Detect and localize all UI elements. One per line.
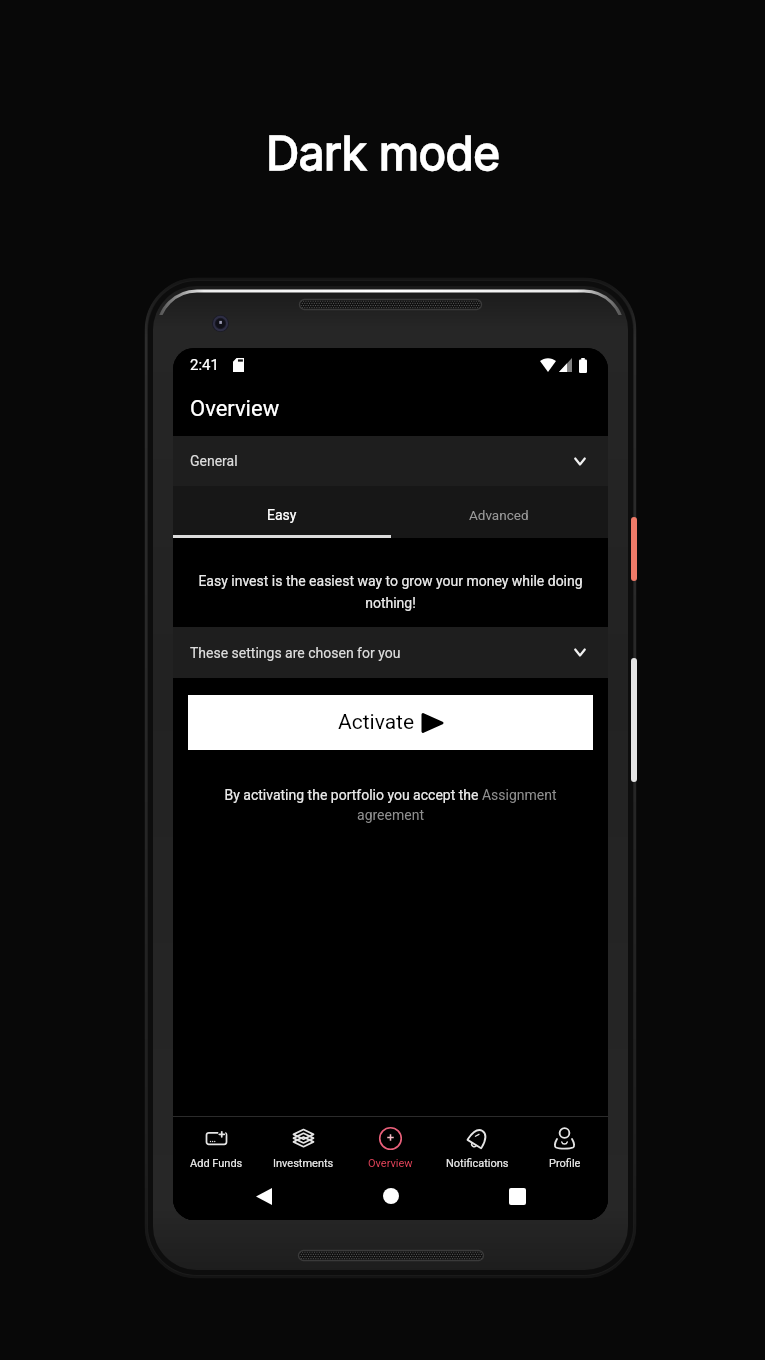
staticText: Add Funds [190, 1157, 243, 1170]
button[interactable]: Home [374, 1179, 408, 1213]
button[interactable]: Add Funds [173, 1117, 260, 1178]
staticText: Advanced [469, 507, 529, 523]
button[interactable]: Notifications [434, 1117, 521, 1178]
staticText: Profile [549, 1157, 581, 1170]
staticText: Investments [273, 1157, 334, 1170]
button[interactable]: Easy [173, 486, 390, 538]
staticText: Notifications [446, 1157, 509, 1170]
staticText: By activating the portfolio you accept t… [221, 787, 560, 823]
staticText: Easy [267, 507, 297, 523]
button[interactable]: These settings are chosen for you [173, 627, 608, 678]
button[interactable]: Investments [260, 1117, 347, 1178]
staticText: Dark mode [266, 125, 500, 181]
staticText: Activate [338, 710, 415, 735]
staticText: 2:41 [190, 356, 219, 374]
staticText: Overview [368, 1157, 413, 1170]
staticText: Overview [190, 396, 280, 422]
staticText: These settings are chosen for you [190, 645, 401, 661]
button[interactable]: Activate [188, 695, 593, 750]
button[interactable]: Advanced [390, 486, 608, 538]
staticText: Easy invest is the easiest way to grow y… [187, 573, 594, 612]
button[interactable]: General [173, 436, 608, 486]
button[interactable]: Recent apps [500, 1179, 534, 1213]
button[interactable]: Overview [347, 1117, 434, 1178]
button[interactable]: Profile [521, 1117, 608, 1178]
button[interactable]: Back [247, 1179, 281, 1213]
staticText: General [190, 453, 238, 469]
